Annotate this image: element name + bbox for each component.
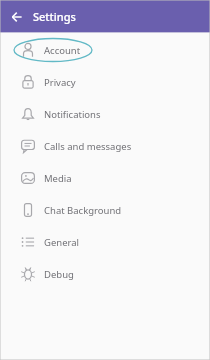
staticText: Calls and messages <box>44 140 132 153</box>
button[interactable]: Account <box>0 34 210 66</box>
staticText: Chat Background <box>44 204 122 217</box>
button[interactable]: Back <box>6 6 28 28</box>
staticText: Privacy <box>44 76 76 89</box>
staticText: General <box>44 236 80 249</box>
staticText: Account <box>44 44 81 57</box>
staticText: Debug <box>44 268 74 281</box>
staticText: Notifications <box>44 108 101 121</box>
button[interactable]: Media <box>0 162 210 194</box>
staticText: Media <box>44 172 72 185</box>
button[interactable]: Privacy <box>0 66 210 98</box>
staticText: Settings <box>33 9 76 24</box>
button[interactable]: General <box>0 226 210 258</box>
button[interactable]: Calls and messages <box>0 130 210 162</box>
button[interactable]: Debug <box>0 258 210 290</box>
button[interactable]: Chat Background <box>0 194 210 226</box>
button[interactable]: Notifications <box>0 98 210 130</box>
